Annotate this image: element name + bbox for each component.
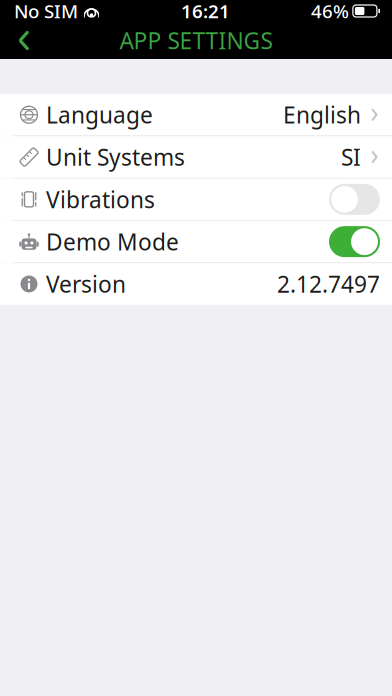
staticText: No SIM: [14, 0, 78, 23]
staticText: Version: [46, 269, 126, 299]
staticText: 16:21: [181, 0, 230, 23]
staticText: English: [283, 100, 361, 130]
button[interactable]: Vibrations: [0, 179, 392, 220]
staticText: Language: [46, 100, 153, 130]
button[interactable]: Unit Systems: [0, 136, 392, 178]
staticText: 46%: [311, 0, 349, 23]
staticText: Unit Systems: [46, 142, 185, 172]
staticText: Demo Mode: [46, 227, 179, 257]
button[interactable]: Demo Mode: [0, 221, 392, 262]
staticText: 2.12.7497: [277, 269, 380, 299]
staticText: Vibrations: [46, 184, 155, 214]
staticText: APP SETTINGS: [119, 25, 272, 55]
staticText: SI: [341, 142, 361, 172]
button[interactable]: Back: [0, 22, 48, 59]
button[interactable]: Language: [0, 94, 392, 135]
